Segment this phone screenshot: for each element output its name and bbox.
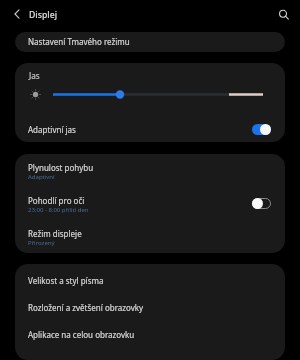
staticText: Adaptivní	[28, 173, 55, 181]
staticText: Pohodlí pro oči	[28, 195, 85, 206]
button[interactable]: Search	[271, 2, 297, 28]
button[interactable]: Back	[4, 1, 30, 27]
staticText: Přirozený	[28, 239, 55, 247]
staticText: Plynulost pohybu	[28, 162, 94, 173]
button[interactable]: Adaptivní jas	[15, 117, 285, 141]
staticText: Jas	[29, 70, 40, 81]
button[interactable]: Pohodlí pro oči	[15, 188, 285, 221]
staticText: Rozložení a zvětšení obrazovky	[28, 302, 144, 313]
button[interactable]: Toggle off	[252, 198, 271, 209]
button[interactable]: Aplikace na celou obrazovku	[15, 321, 285, 348]
staticText: Adaptivní jas	[28, 124, 76, 135]
staticText: Režim displeje	[28, 228, 82, 239]
staticText: 23:00 - 8:00 příští den	[28, 206, 89, 214]
staticText: Nastavení Tmavého režimu	[28, 36, 130, 47]
button[interactable]: Režim displeje	[15, 221, 285, 253]
button[interactable]: Velikost a styl písma	[15, 267, 285, 294]
staticText: Aplikace na celou obrazovku	[28, 329, 135, 340]
button[interactable]: Plynulost pohybu	[15, 155, 285, 188]
staticText: Displej	[29, 9, 57, 21]
button[interactable]: Rozložení a zvětšení obrazovky	[15, 294, 285, 321]
button[interactable]: Toggle on	[252, 124, 271, 135]
staticText: Velikost a styl písma	[28, 275, 104, 286]
